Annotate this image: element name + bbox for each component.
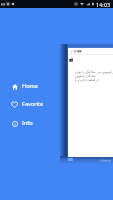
button[interactable]: Home bbox=[0, 80, 113, 92]
button[interactable]: Info bbox=[0, 117, 113, 129]
staticText: Favorite bbox=[22, 100, 44, 108]
staticText: Home bbox=[100, 158, 111, 163]
staticText: Info bbox=[22, 119, 33, 127]
button[interactable]: Favorite bbox=[0, 98, 113, 110]
staticText: لورم ایپسوم متن ساختگی با تولی bbox=[75, 70, 113, 74]
staticText: سادگی نامفهوم bbox=[75, 74, 96, 78]
staticText: 14:03 bbox=[96, 1, 111, 8]
staticText: از صنعت چاپ و با bbox=[75, 78, 99, 82]
staticText: Home bbox=[22, 82, 38, 90]
